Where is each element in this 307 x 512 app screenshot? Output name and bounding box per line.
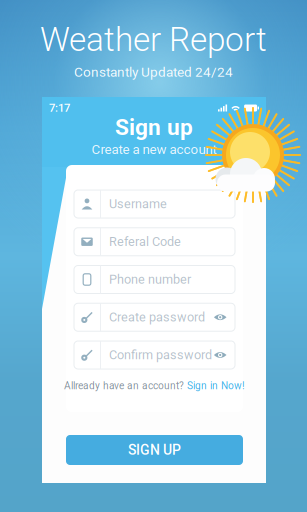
button[interactable]: SIGN UP xyxy=(66,435,243,465)
staticText: SIGN UP xyxy=(128,442,181,458)
staticText: Confirm password xyxy=(109,348,212,362)
button[interactable]: Username xyxy=(74,190,235,218)
staticText: 7:17 xyxy=(49,101,70,115)
staticText: Weather Report xyxy=(40,20,267,59)
staticText: Create a new account xyxy=(91,142,216,157)
staticText: Constantly Updated 24/24 xyxy=(74,64,233,80)
button[interactable]: Confirm password xyxy=(74,341,235,369)
staticText: Sign in Now! xyxy=(187,380,245,392)
button[interactable]: Sign in Now! xyxy=(187,380,245,392)
button[interactable]: Create password xyxy=(74,303,235,331)
staticText: Create password xyxy=(109,310,205,325)
staticText: Allready have an account? xyxy=(64,380,184,392)
staticText: Referal Code xyxy=(109,234,181,249)
staticText: Username xyxy=(109,197,167,211)
staticText: Sign up xyxy=(115,114,193,141)
button[interactable]: Referal Code xyxy=(74,228,235,256)
button[interactable]: Phone number xyxy=(74,265,235,293)
staticText: Phone number xyxy=(109,272,191,287)
